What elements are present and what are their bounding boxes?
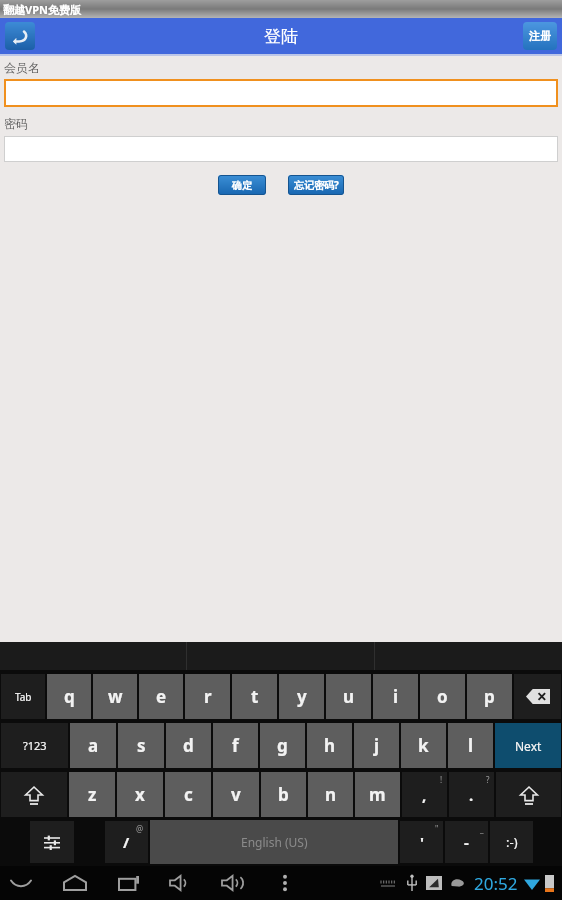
button[interactable]: d <box>166 723 211 768</box>
staticText: l <box>468 734 474 757</box>
button[interactable]: r <box>185 674 230 719</box>
button[interactable]: b <box>261 772 306 817</box>
button[interactable]: Keyboard settings <box>30 821 74 863</box>
button[interactable]: @ <box>105 821 148 863</box>
button[interactable]: k <box>401 723 446 768</box>
staticText: b <box>278 783 289 806</box>
staticText: :-) <box>506 833 518 851</box>
button[interactable]: o <box>420 674 465 719</box>
staticText: w <box>108 685 123 708</box>
button[interactable]: Tab <box>1 674 45 719</box>
button[interactable]: Volume up <box>220 868 246 898</box>
button[interactable]: x <box>117 772 163 817</box>
button[interactable]: t <box>232 674 277 719</box>
staticText: 密码 <box>4 116 28 131</box>
button[interactable]: z <box>69 772 115 817</box>
button[interactable]: :-) <box>490 821 533 863</box>
button[interactable]: n <box>308 772 353 817</box>
button[interactable]: v <box>213 772 259 817</box>
button[interactable]: g <box>260 723 305 768</box>
button[interactable]: " <box>400 821 443 863</box>
button[interactable]: Volume down <box>168 868 194 898</box>
staticText: _ <box>480 823 484 834</box>
button[interactable] <box>4 136 558 162</box>
staticText: 忘记密码? <box>294 178 339 192</box>
button[interactable]: s <box>118 723 164 768</box>
staticText: v <box>231 783 241 806</box>
staticText: y <box>297 685 307 708</box>
button[interactable]: q <box>47 674 91 719</box>
button[interactable]: Back <box>8 868 34 898</box>
button[interactable]: e <box>139 674 183 719</box>
button[interactable]: Backspace <box>514 674 561 719</box>
staticText: e <box>156 685 167 708</box>
staticText: @ <box>136 823 144 834</box>
staticText: ! <box>440 774 443 785</box>
button[interactable]: u <box>326 674 371 719</box>
staticText: m <box>369 783 386 806</box>
staticText: , <box>422 785 427 805</box>
staticText: i <box>393 685 399 708</box>
staticText: q <box>64 685 75 708</box>
staticText: a <box>88 734 99 757</box>
button[interactable]: ! <box>402 772 447 817</box>
staticText: 确定 <box>232 179 252 192</box>
button[interactable]: Recents <box>116 868 142 898</box>
staticText: r <box>204 685 212 708</box>
staticText: h <box>324 734 336 757</box>
staticText: 会员名 <box>4 60 40 75</box>
button[interactable]: _ <box>445 821 488 863</box>
staticText: j <box>374 734 380 757</box>
button[interactable]: ?123 <box>1 723 68 768</box>
button[interactable]: p <box>467 674 512 719</box>
staticText: d <box>183 734 194 757</box>
staticText: . <box>469 785 474 805</box>
button[interactable]: Shift <box>496 772 561 817</box>
staticText: ? <box>486 774 490 785</box>
button[interactable]: Home <box>62 868 88 898</box>
staticText: o <box>437 685 448 708</box>
staticText: 登陆 <box>264 26 298 47</box>
staticText: n <box>325 783 337 806</box>
button[interactable]: c <box>165 772 211 817</box>
staticText: x <box>135 783 145 806</box>
button[interactable]: j <box>354 723 399 768</box>
staticText: ' <box>420 832 424 852</box>
staticText: t <box>251 685 259 708</box>
button[interactable]: Next <box>495 723 561 768</box>
staticText: 翻越VPN免费版 <box>3 2 81 17</box>
button[interactable]: i <box>373 674 418 719</box>
button[interactable]: 确定 <box>218 175 266 195</box>
button[interactable]: l <box>448 723 493 768</box>
staticText: English (US) <box>241 834 308 850</box>
staticText: z <box>88 783 97 806</box>
staticText: " <box>435 823 439 834</box>
staticText: p <box>484 685 495 708</box>
button[interactable]: h <box>307 723 352 768</box>
button[interactable]: f <box>213 723 258 768</box>
staticText: u <box>343 685 355 708</box>
staticText: k <box>418 734 429 757</box>
button[interactable]: 注册 <box>523 22 557 50</box>
staticText: ?123 <box>23 738 47 753</box>
staticText: - <box>464 832 469 852</box>
button[interactable]: Back <box>5 22 35 50</box>
staticText: c <box>184 783 193 806</box>
button[interactable] <box>4 79 558 107</box>
button[interactable]: Shift <box>1 772 67 817</box>
staticText: 注册 <box>529 29 551 43</box>
staticText: Tab <box>15 690 32 704</box>
button[interactable]: 忘记密码? <box>288 175 344 195</box>
staticText: / <box>123 832 130 852</box>
button[interactable]: ? <box>449 772 494 817</box>
staticText: Next <box>515 738 542 754</box>
button[interactable]: y <box>279 674 324 719</box>
staticText: 20:52 <box>474 872 518 895</box>
button[interactable]: More <box>272 868 298 898</box>
button[interactable]: English (US) <box>150 820 398 864</box>
staticText: f <box>232 734 239 757</box>
button[interactable]: a <box>70 723 116 768</box>
button[interactable]: m <box>355 772 400 817</box>
staticText: g <box>277 734 288 757</box>
button[interactable]: w <box>93 674 137 719</box>
